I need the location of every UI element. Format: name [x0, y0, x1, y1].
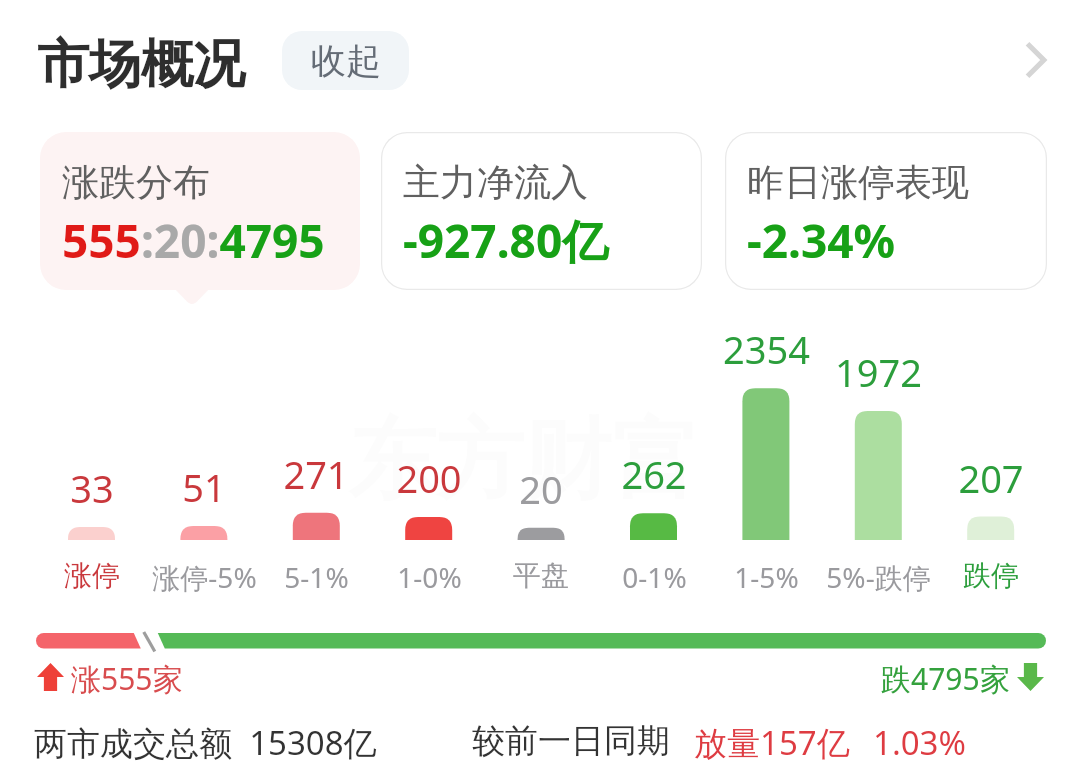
staticText: 33 [70, 462, 114, 514]
staticText: 0-1% [622, 558, 687, 596]
staticText: 51 [182, 461, 226, 513]
button[interactable]: 昨日涨停表现 [725, 132, 1047, 290]
button[interactable]: 主力净流入 [381, 132, 702, 290]
staticText: 涨555家 [71, 658, 183, 699]
other: 下跌 [1017, 663, 1044, 691]
staticText: 5-1% [284, 558, 349, 596]
staticText: 1-5% [734, 558, 799, 596]
staticText: 放量157亿 [694, 720, 850, 765]
staticText: 两市成交总额 15308亿 [34, 720, 377, 765]
staticText: 较前一日同期 [472, 720, 670, 762]
staticText: 555:20:4795 [62, 209, 325, 272]
staticText: 跌4795家 [881, 658, 1010, 699]
staticText: 207 [958, 452, 1024, 504]
staticText: 20 [519, 463, 563, 515]
staticText: -2.34% [747, 209, 896, 272]
staticText: 平盘 [513, 558, 569, 593]
staticText: 200 [396, 452, 462, 504]
other: 上涨 [37, 663, 64, 691]
staticText: 跌停 [963, 558, 1019, 593]
button[interactable]: 展开详情 [990, 15, 1080, 105]
staticText: 1972 [835, 346, 922, 398]
staticText: 1-0% [397, 558, 462, 596]
staticText: 市场概况 [37, 32, 245, 98]
staticText: 涨跌分布 [62, 159, 210, 206]
staticText: 涨停 [64, 558, 120, 593]
button[interactable]: 收起 [282, 31, 409, 90]
staticText: 1.03% [873, 720, 966, 765]
button[interactable]: 涨跌分布 [40, 132, 360, 290]
staticText: -927.80亿 [403, 209, 609, 272]
staticText: 收起 [311, 39, 381, 83]
staticText: 271 [283, 448, 349, 500]
staticText: 262 [621, 448, 687, 500]
staticText: 昨日涨停表现 [747, 159, 969, 206]
staticText: 涨停-5% [152, 558, 257, 596]
staticText: 2354 [723, 323, 810, 375]
staticText: 东方财富 [348, 405, 700, 516]
staticText: 主力净流入 [403, 159, 588, 206]
staticText: 5%-跌停 [826, 558, 931, 596]
